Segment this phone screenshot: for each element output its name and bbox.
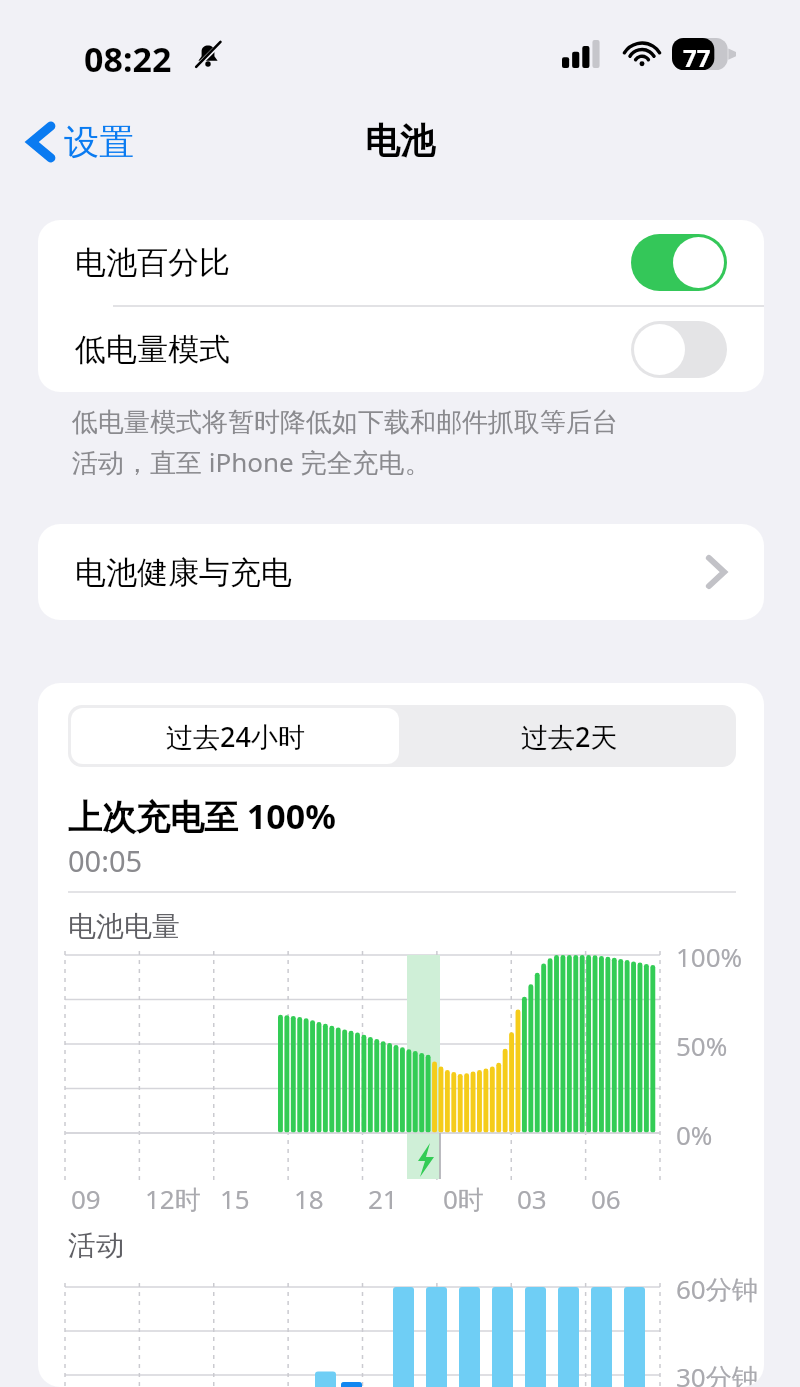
staticText: 0时 [443, 1181, 484, 1217]
staticText: 100% [676, 939, 743, 974]
staticText: 60分钟 [676, 1271, 758, 1307]
staticText: 18 [294, 1181, 324, 1216]
staticText: 77 [683, 41, 711, 74]
staticText: 03 [517, 1181, 547, 1216]
button[interactable]: 过去24小时 [71, 708, 399, 764]
staticText: 21 [368, 1181, 398, 1216]
staticText: 上次充电至 100% [68, 793, 336, 839]
staticText: 08:22 [84, 36, 172, 82]
button[interactable]: 设置 [20, 112, 142, 172]
staticText: 15 [220, 1181, 250, 1216]
staticText: 低电量模式 [75, 330, 230, 369]
staticText: 设置 [64, 120, 134, 164]
button[interactable]: 电池健康与充电 [38, 524, 764, 620]
staticText: 0% [676, 1117, 713, 1152]
button[interactable]: 低电量模式 [38, 307, 764, 392]
staticText: 电池百分比 [75, 243, 230, 282]
staticText: 低电量模式将暂时降低如下载和邮件抓取等后台 活动，直至 iPhone 完全充电。 [72, 406, 752, 480]
staticText: 过去2天 [521, 718, 618, 755]
staticText: 30分钟 [676, 1359, 758, 1387]
staticText: 电池 [365, 119, 435, 163]
staticText: 12时 [145, 1181, 201, 1217]
other: Battery Health and Charging [707, 556, 726, 588]
staticText: 50% [676, 1028, 728, 1063]
staticText: 电池健康与充电 [75, 553, 292, 592]
staticText: 过去24小时 [166, 718, 305, 755]
staticText: 00:05 [68, 841, 143, 880]
button[interactable]: 过去2天 [402, 705, 736, 767]
staticText: 09 [71, 1181, 101, 1216]
staticText: 电池电量 [68, 909, 180, 944]
button[interactable]: 电池百分比 [38, 220, 764, 305]
staticText: 活动 [68, 1228, 124, 1263]
staticText: 06 [591, 1181, 621, 1216]
